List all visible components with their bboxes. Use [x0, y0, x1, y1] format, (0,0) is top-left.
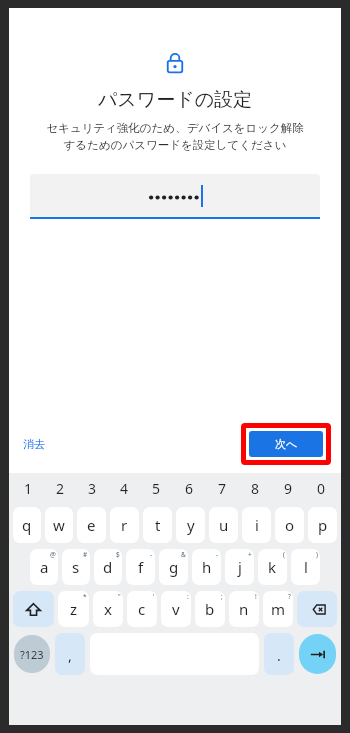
staticText: 3 [88, 479, 97, 498]
button[interactable]: i [242, 507, 271, 543]
staticText: o [285, 515, 295, 535]
staticText: : [187, 592, 189, 601]
staticText: i [255, 515, 259, 535]
staticText: 消去 [23, 437, 45, 451]
button[interactable]: z [58, 591, 89, 627]
staticText: c [138, 599, 146, 619]
button[interactable]: Enter [299, 634, 336, 674]
staticText: ?123 [20, 647, 44, 662]
button[interactable]: f [126, 549, 155, 585]
button[interactable]: p [308, 507, 337, 543]
staticText: 4 [120, 479, 129, 498]
staticText: e [87, 515, 96, 535]
button[interactable]: o [275, 507, 304, 543]
staticText: ( [283, 550, 285, 559]
button[interactable]: 5 [140, 473, 173, 504]
staticText: + [248, 550, 252, 559]
button[interactable]: v [161, 591, 191, 627]
staticText: w [53, 515, 65, 535]
button[interactable]: 9 [272, 473, 305, 504]
button[interactable]: 0 [305, 473, 338, 504]
button[interactable]: 7 [206, 473, 239, 504]
staticText: @ [50, 550, 56, 559]
staticText: k [268, 557, 277, 577]
staticText: 6 [185, 479, 194, 498]
staticText: # [83, 550, 88, 559]
button[interactable]: b [195, 591, 225, 627]
button[interactable]: q [13, 507, 41, 543]
button[interactable]: d [94, 549, 122, 585]
button[interactable]: 次へ [249, 431, 323, 457]
button[interactable]: k [258, 549, 287, 585]
button[interactable]: 3 [76, 473, 108, 504]
staticText: 次へ [275, 437, 298, 451]
staticText: x [104, 599, 112, 619]
staticText: 5 [152, 479, 161, 498]
button[interactable]: l [291, 549, 320, 585]
button[interactable]: y [176, 507, 205, 543]
staticText: ' [153, 592, 155, 601]
button[interactable]: 6 [173, 473, 206, 504]
staticText: ? [288, 592, 291, 601]
staticText: d [103, 557, 113, 577]
staticText: 9 [284, 479, 293, 498]
button[interactable]: , [55, 633, 85, 675]
button[interactable]: t [143, 507, 172, 543]
staticText: b [205, 599, 215, 619]
button[interactable]: x [93, 591, 123, 627]
button[interactable]: 8 [239, 473, 272, 504]
button[interactable]: w [45, 507, 73, 543]
staticText: 0 [317, 479, 326, 498]
staticText: h [202, 557, 212, 577]
staticText: 8 [251, 479, 260, 498]
staticText: p [318, 515, 328, 535]
staticText: - [150, 550, 153, 559]
button[interactable]: 2 [44, 473, 76, 504]
button[interactable]: j [225, 549, 254, 585]
button[interactable]: h [192, 549, 221, 585]
staticText: j [238, 557, 242, 577]
button[interactable]: g [159, 549, 188, 585]
staticText: , [68, 646, 72, 665]
staticText: z [70, 599, 78, 619]
button[interactable]: c [127, 591, 157, 627]
staticText: u [219, 515, 229, 535]
staticText: " [118, 592, 121, 601]
button[interactable]: . [264, 633, 294, 675]
staticText: v [172, 599, 180, 619]
button[interactable]: 4 [108, 473, 140, 504]
staticText: パスワードの設定 [9, 88, 341, 112]
staticText: - [216, 550, 219, 559]
button[interactable]: u [209, 507, 238, 543]
staticText: ) [316, 550, 318, 559]
button[interactable]: a [30, 549, 58, 585]
button[interactable]: n [229, 591, 259, 627]
staticText: ! [255, 592, 257, 601]
button[interactable]: ?123 [14, 635, 50, 673]
button[interactable]: 消去 [9, 429, 57, 459]
button[interactable]: e [77, 507, 106, 543]
staticText: 2 [56, 479, 65, 498]
staticText: t [155, 515, 161, 535]
button[interactable]: r [110, 507, 139, 543]
staticText: a [40, 557, 49, 577]
staticText: セキュリティ強化のため、デバイスをロック解除 するためのパスワードを設定してくだ… [19, 121, 331, 152]
staticText: 7 [218, 479, 227, 498]
button[interactable]: Backspace [297, 591, 337, 627]
button[interactable]: m [263, 591, 293, 627]
staticText: 1 [24, 479, 33, 498]
button[interactable]: Shift [13, 591, 54, 627]
staticText: r [121, 515, 128, 535]
staticText: q [22, 515, 32, 535]
staticText: . [277, 646, 281, 665]
staticText: $ [116, 550, 120, 559]
button[interactable] [30, 174, 320, 217]
staticText: * [83, 592, 87, 601]
staticText: l [304, 557, 308, 577]
staticText: s [72, 557, 80, 577]
button[interactable]: s [62, 549, 90, 585]
button[interactable]: 1 [12, 473, 44, 504]
staticText: g [169, 557, 179, 577]
staticText: ; [221, 592, 223, 601]
